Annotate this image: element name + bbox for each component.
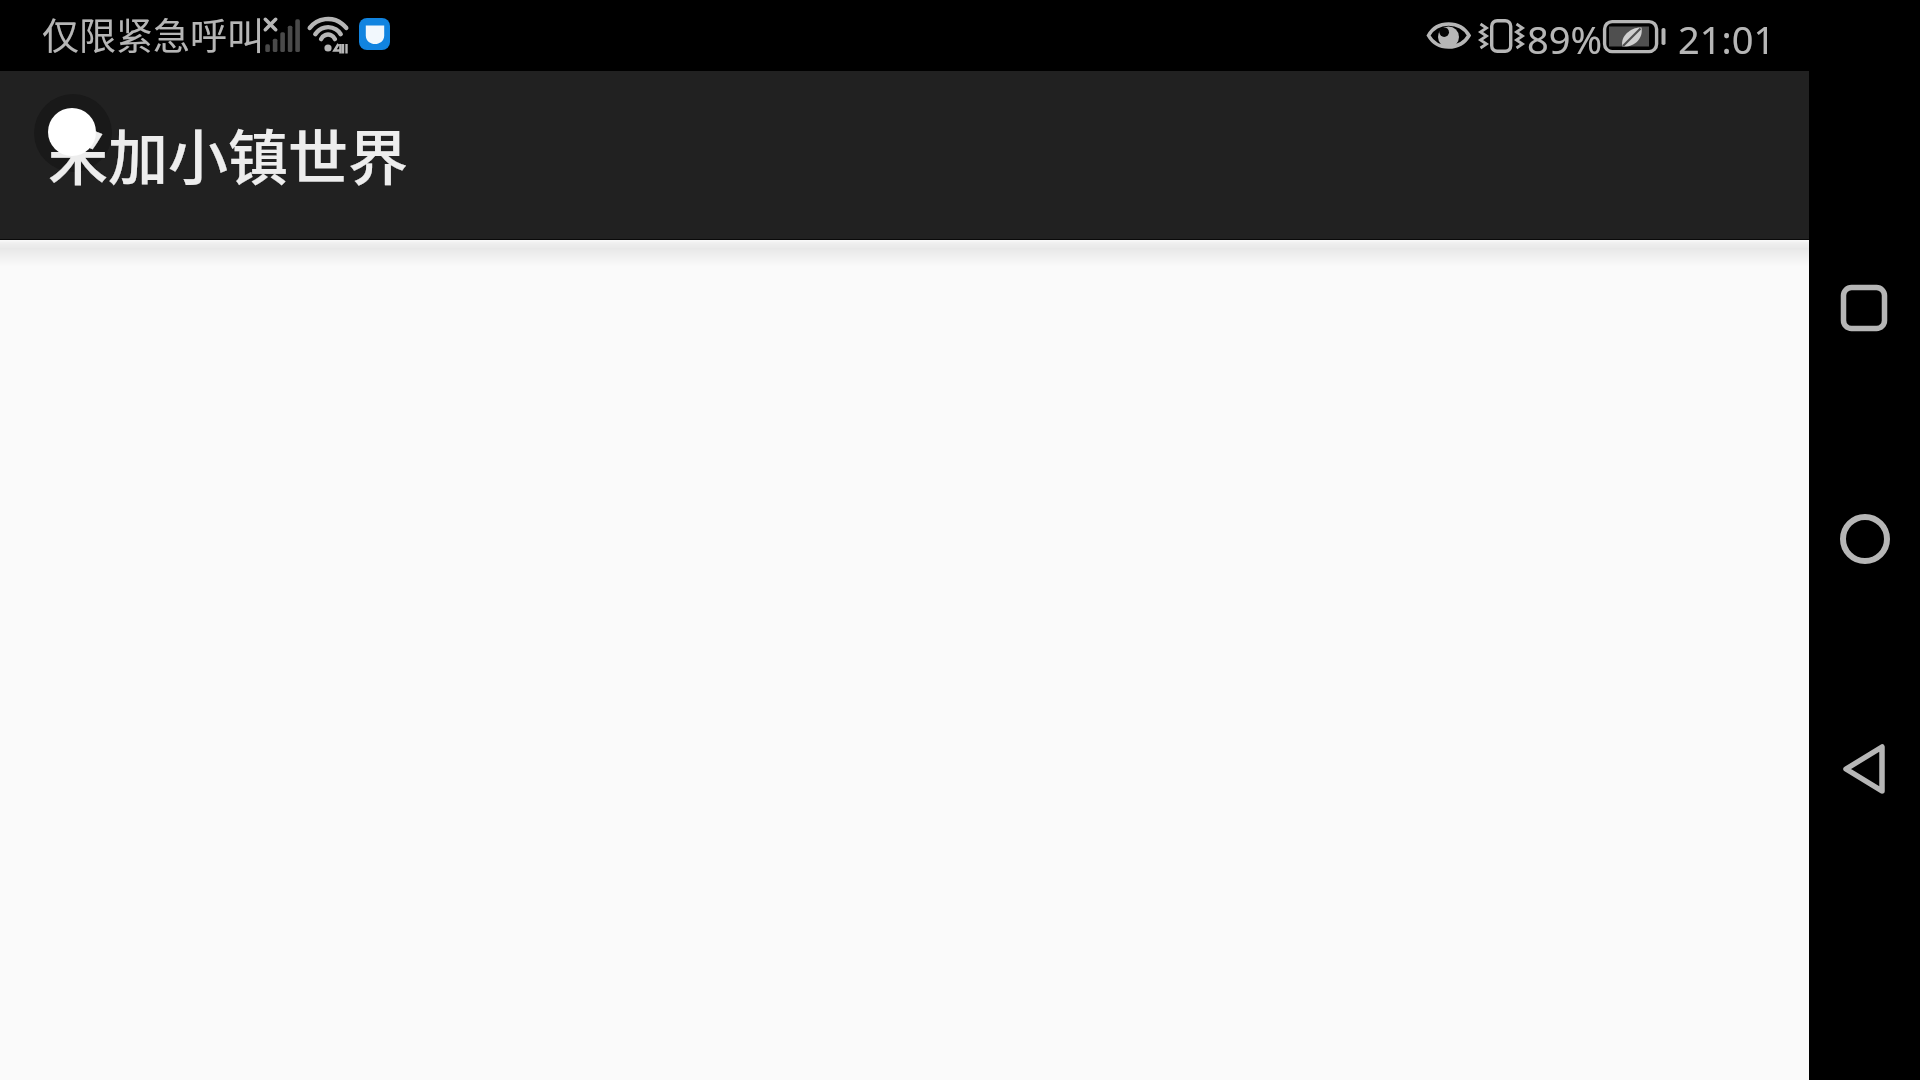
staticText: 仅限紧急呼叫 [42, 7, 264, 61]
button[interactable]: Home [1815, 489, 1915, 589]
button[interactable]: Navigate up [34, 94, 112, 172]
staticText: 米加小镇世界 [48, 110, 408, 197]
button[interactable]: Recent apps [1814, 258, 1914, 358]
staticText: 89% [1527, 13, 1603, 65]
button[interactable]: Back [1814, 719, 1914, 819]
staticText: 21:01 [1678, 13, 1776, 65]
